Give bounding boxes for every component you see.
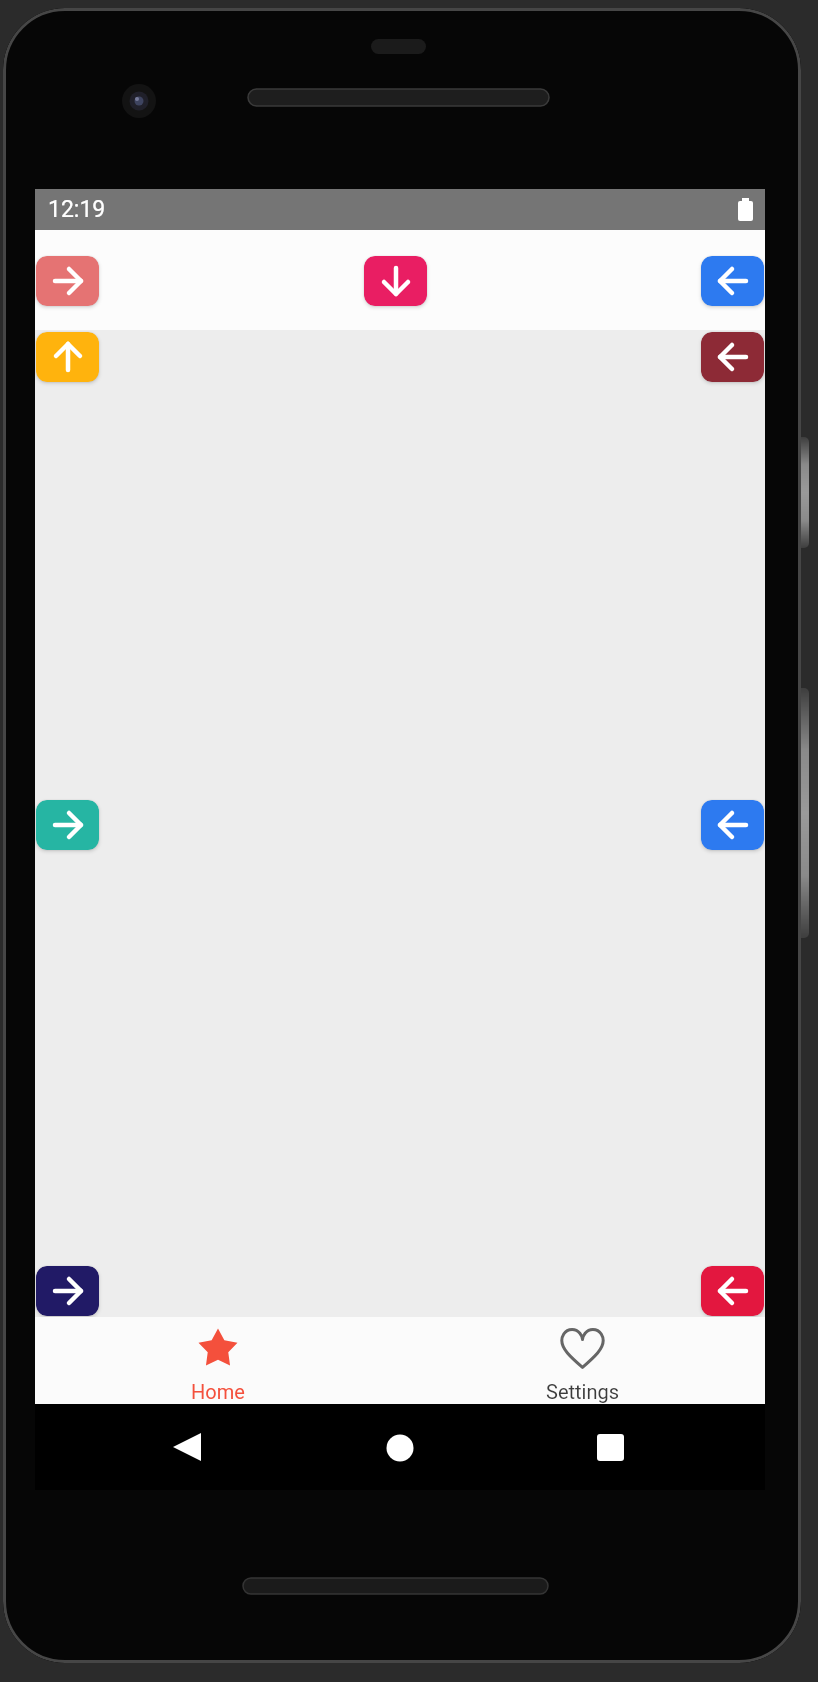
button[interactable] (701, 256, 764, 306)
button[interactable] (36, 256, 99, 306)
button[interactable] (36, 1266, 99, 1316)
button[interactable] (701, 332, 764, 382)
staticText: 12:19 (48, 196, 106, 223)
staticText: Home (191, 1380, 245, 1403)
button[interactable] (36, 332, 99, 382)
button[interactable]: Home (35, 1317, 400, 1404)
button[interactable]: Settings (400, 1317, 765, 1404)
button[interactable] (522, 1404, 765, 1490)
button[interactable] (364, 256, 427, 306)
button[interactable] (36, 800, 99, 850)
button[interactable] (701, 800, 764, 850)
button[interactable] (35, 1404, 279, 1490)
staticText: Settings (546, 1380, 620, 1403)
button[interactable] (279, 1404, 522, 1490)
button[interactable] (701, 1266, 764, 1316)
